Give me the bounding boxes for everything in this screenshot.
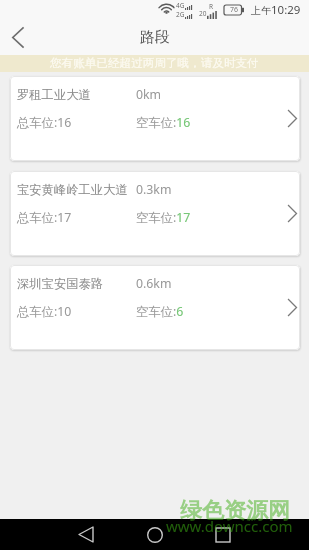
staticText: R bbox=[209, 2, 214, 11]
button[interactable]: 深圳宝安国泰路 bbox=[10, 265, 300, 350]
staticText: 总车位:10 bbox=[17, 303, 72, 320]
staticText: 空车位:17 bbox=[136, 209, 191, 226]
staticText: 空车位:16 bbox=[136, 114, 191, 131]
staticText: 路段 bbox=[140, 28, 170, 47]
staticText: www.downcc.com bbox=[166, 516, 293, 536]
staticText: 空车位:6 bbox=[136, 303, 184, 320]
staticText: 上午10:29 bbox=[251, 2, 301, 18]
staticText: 0km bbox=[136, 86, 162, 103]
staticText: 0.3km bbox=[136, 181, 172, 198]
button[interactable]: Home bbox=[135, 519, 175, 550]
staticText: 总车位:16 bbox=[17, 114, 72, 131]
staticText: 您有账单已经超过两周了哦，请及时支付 bbox=[50, 56, 259, 71]
button[interactable]: Back bbox=[66, 519, 106, 550]
staticText: 0.6km bbox=[136, 275, 172, 292]
staticText: 20 bbox=[199, 9, 207, 18]
staticText: 76 bbox=[230, 5, 239, 15]
staticText: 总车位:17 bbox=[17, 209, 72, 226]
button[interactable]: 罗租工业大道 bbox=[10, 76, 300, 161]
staticText: 2G bbox=[176, 10, 185, 19]
staticText: 罗租工业大道 bbox=[17, 87, 91, 102]
button[interactable]: Recents bbox=[203, 519, 243, 550]
staticText: 深圳宝安国泰路 bbox=[17, 276, 104, 291]
button[interactable]: 宝安黄峰岭工业大道 bbox=[10, 171, 300, 256]
button[interactable]: 返回 bbox=[0, 20, 35, 55]
staticText: 绿色资源网 bbox=[180, 497, 290, 525]
staticText: 4G bbox=[176, 1, 185, 10]
staticText: 宝安黄峰岭工业大道 bbox=[17, 182, 128, 197]
